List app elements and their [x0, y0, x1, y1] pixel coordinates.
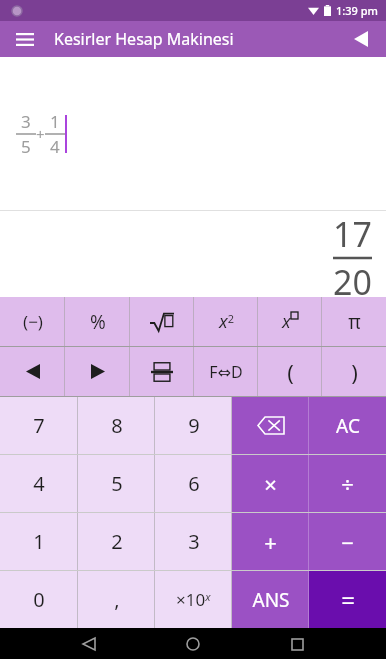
staticText: Kesirler Hesap Makinesi: [54, 28, 234, 50]
button[interactable]: 0: [0, 571, 78, 628]
staticText: =: [341, 583, 355, 616]
button[interactable]: 5: [78, 455, 155, 512]
button[interactable]: Menu: [10, 24, 40, 54]
staticText: (−): [23, 310, 43, 333]
button[interactable]: 3: [155, 513, 232, 570]
button[interactable]: π: [322, 297, 386, 346]
button[interactable]: ANS: [232, 571, 309, 628]
button[interactable]: 9: [155, 397, 232, 454]
button[interactable]: +: [232, 513, 309, 570]
staticText: AC: [336, 413, 360, 439]
staticText: +: [36, 124, 45, 144]
button[interactable]: Home: [178, 629, 208, 659]
staticText: (: [287, 357, 294, 387]
staticText: F⇔D: [209, 361, 243, 383]
button[interactable]: −: [309, 513, 386, 570]
staticText: 7: [33, 412, 45, 439]
staticText: 2: [111, 528, 123, 555]
button[interactable]: ): [322, 347, 386, 396]
button[interactable]: Square: [194, 297, 258, 346]
staticText: ×10x: [176, 588, 211, 611]
staticText: 3: [188, 528, 200, 555]
staticText: 0: [33, 586, 45, 613]
staticText: 3: [21, 110, 31, 133]
staticText: 1: [50, 110, 60, 133]
button[interactable]: AC: [309, 397, 386, 454]
staticText: 5: [111, 470, 123, 497]
button[interactable]: 7: [0, 397, 78, 454]
staticText: ÷: [341, 469, 354, 499]
staticText: π: [348, 309, 361, 335]
staticText: ): [351, 357, 358, 387]
button[interactable]: ÷: [309, 455, 386, 512]
staticText: 9: [188, 412, 200, 439]
button[interactable]: (−): [0, 297, 65, 346]
staticText: 5: [21, 135, 31, 158]
staticText: −: [341, 527, 354, 557]
button[interactable]: Times ten to the power: [155, 571, 232, 628]
button[interactable]: 8: [78, 397, 155, 454]
button[interactable]: F⇔D: [194, 347, 258, 396]
button[interactable]: Fraction: [130, 347, 194, 396]
staticText: 1:39 pm: [336, 3, 378, 18]
staticText: 1: [33, 528, 45, 555]
staticText: 4: [33, 470, 45, 497]
button[interactable]: (: [258, 347, 322, 396]
button[interactable]: Back: [74, 629, 104, 659]
button[interactable]: Back: [344, 22, 378, 56]
staticText: x: [282, 309, 291, 334]
button[interactable]: 6: [155, 455, 232, 512]
button[interactable]: ×: [232, 455, 309, 512]
staticText: 17: [333, 211, 372, 257]
button[interactable]: =: [309, 571, 386, 628]
button[interactable]: ,: [78, 571, 155, 628]
staticText: +: [264, 527, 277, 557]
button[interactable]: 2: [78, 513, 155, 570]
button[interactable]: Move right: [65, 347, 130, 396]
staticText: 6: [188, 470, 200, 497]
button[interactable]: Square root: [130, 297, 194, 346]
staticText: 8: [111, 412, 123, 439]
staticText: %: [90, 309, 106, 335]
button[interactable]: Delete: [232, 397, 309, 454]
staticText: ANS: [252, 587, 290, 613]
button[interactable]: 4: [0, 455, 78, 512]
staticText: x2: [219, 309, 234, 334]
button[interactable]: 1: [0, 513, 78, 570]
staticText: ×: [264, 469, 277, 499]
button[interactable]: Move left: [0, 347, 65, 396]
staticText: ,: [114, 586, 120, 613]
button[interactable]: Recents: [282, 629, 312, 659]
button[interactable]: Power: [258, 297, 322, 346]
staticText: 4: [50, 135, 60, 158]
staticText: 20: [333, 259, 372, 297]
button[interactable]: %: [65, 297, 130, 346]
